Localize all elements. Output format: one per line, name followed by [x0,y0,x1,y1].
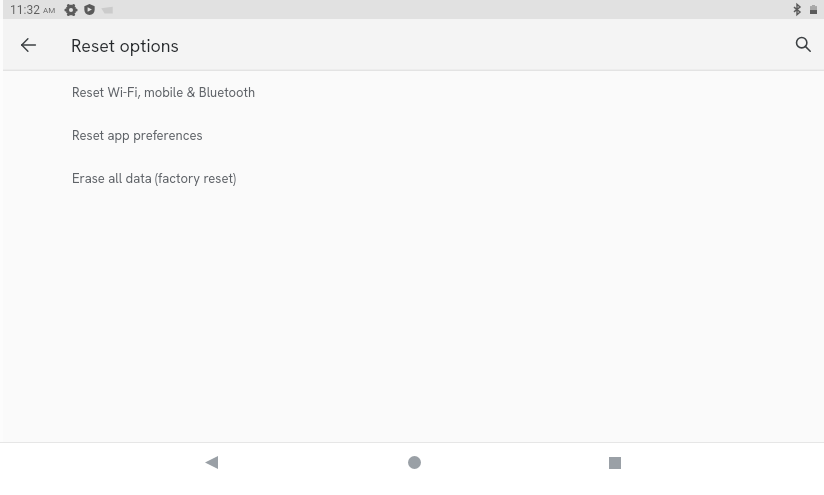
button[interactable]: Home [374,442,454,483]
button[interactable]: Back [171,442,251,483]
staticText: Reset app preferences [72,127,203,144]
button[interactable]: Search [782,19,824,71]
button[interactable]: Reset Wi-Fi, mobile & Bluetooth [0,71,824,114]
staticText: Reset options [71,34,179,57]
button[interactable]: Navigate up [0,19,56,71]
button[interactable]: Recent apps [575,442,655,483]
staticText: 11:32 [10,3,40,17]
button[interactable]: Reset app preferences [0,114,824,157]
staticText: Erase all data (factory reset) [72,170,236,187]
staticText: Reset Wi-Fi, mobile & Bluetooth [72,84,256,101]
staticText: AM [43,6,56,15]
button[interactable]: Erase all data (factory reset) [0,157,824,200]
